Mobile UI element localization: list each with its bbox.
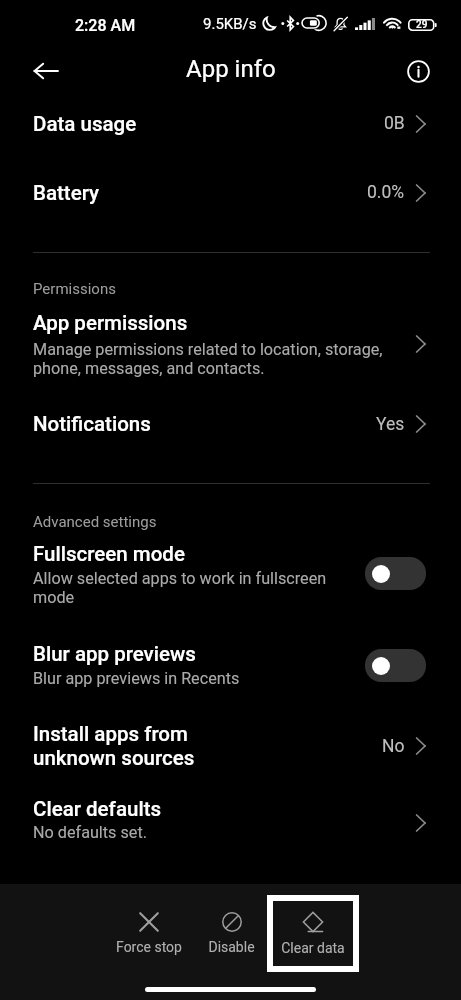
button[interactable]: Notifications [0,404,461,444]
staticText: Yes [376,414,405,435]
staticText: 9.5KB/s [203,15,257,33]
button[interactable]: Clear defaults [0,797,461,842]
button[interactable]: Force stop [108,894,190,972]
staticText: No [382,736,405,757]
staticText: Battery [33,181,367,205]
staticText: App permissions [33,311,188,335]
staticText: Blur app previews in Recents [33,669,240,688]
button[interactable]: Back [23,48,69,94]
button[interactable]: Install apps from unknown sources [0,722,461,770]
staticText: Blur app previews [33,642,196,666]
button[interactable]: Fullscreen mode [365,557,426,590]
staticText: Permissions [33,280,116,298]
staticText: Clear defaults [33,797,162,821]
button[interactable]: Blur app previews [0,634,461,688]
button[interactable]: Battery [0,150,461,235]
staticText: 2:28 AM [75,16,136,35]
button[interactable]: Fullscreen mode [0,531,461,607]
button[interactable]: Disable [190,894,272,972]
staticText: Disable [208,939,255,955]
button[interactable]: Blur app previews [365,649,426,682]
button[interactable]: Data usage [0,97,461,150]
staticText: No defaults set. [33,823,147,842]
button[interactable]: App permissions [0,298,461,378]
staticText: Manage permissions related to location, … [33,340,383,378]
staticText: Allow selected apps to work in fullscree… [33,569,327,607]
staticText: Force stop [116,939,182,955]
button[interactable]: App details [396,49,440,93]
button[interactable]: Clear data [273,901,353,966]
staticText: 0B [384,113,405,134]
staticText: Fullscreen mode [33,542,185,566]
staticText: Install apps from unknown sources [33,722,382,770]
staticText: 0.0% [367,182,405,203]
staticText: Advanced settings [33,513,157,531]
staticText: 29 [416,19,428,31]
staticText: Clear data [281,940,345,956]
staticText: Notifications [33,412,376,436]
staticText: App info [186,55,276,83]
staticText: Data usage [33,112,384,136]
